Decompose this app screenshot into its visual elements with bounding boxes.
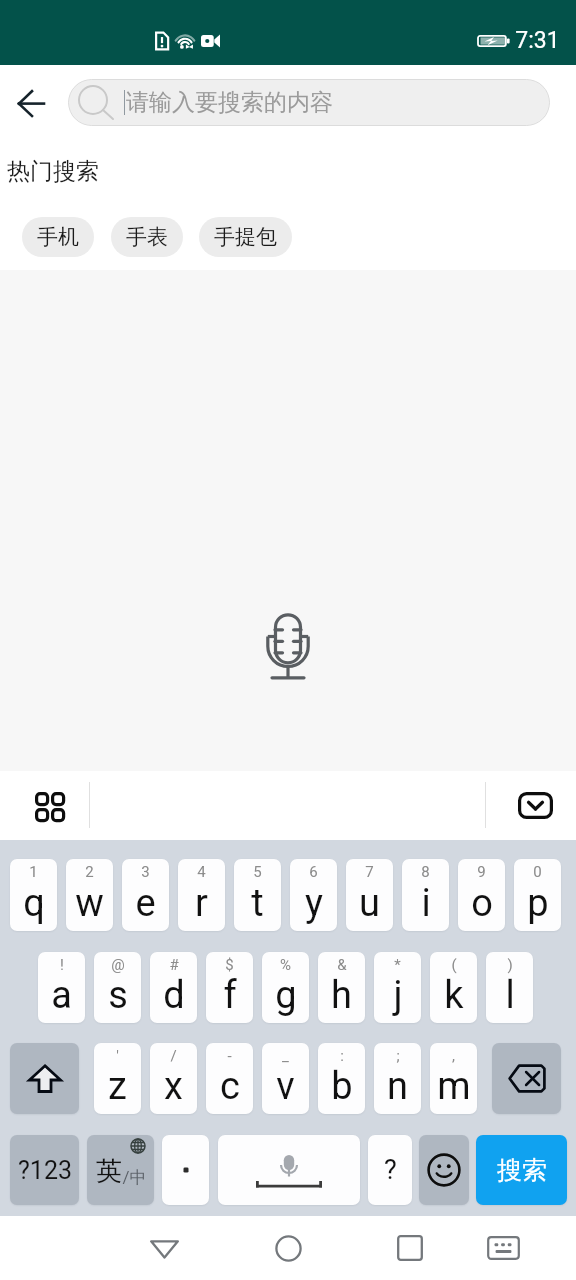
button[interactable]: 1 — [10, 859, 57, 931]
staticText: 7:31 — [515, 27, 560, 54]
button[interactable]: ) — [486, 952, 533, 1023]
staticText: 英 — [96, 1155, 122, 1188]
button[interactable]: _ — [262, 1043, 309, 1114]
button[interactable]: % — [262, 952, 309, 1023]
staticText: ! — [60, 956, 64, 974]
staticText: ) — [507, 956, 513, 974]
staticText: , — [452, 1047, 455, 1065]
staticText: j — [393, 973, 403, 1018]
button[interactable] — [419, 1135, 469, 1205]
staticText: c — [220, 1064, 240, 1109]
button[interactable]: Back — [10, 83, 54, 127]
button[interactable]: Recents — [376, 1220, 444, 1276]
button[interactable]: # — [150, 952, 197, 1023]
button[interactable]: , — [430, 1043, 477, 1114]
button[interactable]: Back — [130, 1220, 198, 1276]
staticText: t — [251, 881, 264, 926]
button[interactable]: 请输入要搜索的内容 — [68, 79, 550, 126]
staticText: * — [394, 956, 401, 974]
button[interactable]: Keyboard menu — [25, 782, 72, 829]
staticText: _ — [282, 1047, 289, 1065]
staticText: f — [223, 973, 237, 1018]
staticText: ( — [451, 956, 457, 974]
staticText: h — [331, 973, 352, 1018]
button[interactable]: 搜索 — [476, 1135, 567, 1205]
staticText: 2 — [85, 863, 94, 881]
staticText: # — [169, 956, 179, 974]
button[interactable]: 2 — [66, 859, 113, 931]
staticText: 手提包 — [214, 224, 277, 250]
button[interactable] — [218, 1135, 360, 1205]
button[interactable] — [492, 1043, 561, 1114]
staticText: r — [195, 881, 208, 926]
button[interactable]: ?123 — [10, 1135, 79, 1205]
staticText: b — [331, 1064, 353, 1109]
button[interactable] — [162, 1135, 209, 1205]
staticText: y — [305, 881, 323, 926]
button[interactable]: 英 — [87, 1135, 154, 1205]
button[interactable]: ' — [94, 1043, 141, 1114]
staticText: 手机 — [37, 224, 79, 250]
button[interactable]: / — [150, 1043, 197, 1114]
staticText: & — [337, 956, 347, 974]
staticText: k — [444, 973, 464, 1018]
staticText: /中 — [122, 1167, 147, 1188]
button[interactable]: * — [374, 952, 421, 1023]
staticText: q — [23, 881, 45, 926]
staticText: 7 — [365, 863, 374, 881]
staticText: 6 — [309, 863, 318, 881]
staticText: $ — [225, 956, 234, 974]
staticText: 5 — [253, 863, 262, 881]
button[interactable]: 手机 — [22, 217, 94, 257]
button[interactable]: 4 — [178, 859, 225, 931]
button[interactable]: @ — [94, 952, 141, 1023]
staticText: l — [505, 973, 515, 1018]
staticText: g — [275, 973, 297, 1018]
staticText: 手表 — [126, 224, 168, 250]
staticText: % — [280, 956, 291, 974]
staticText: u — [359, 881, 380, 926]
staticText: e — [135, 881, 156, 926]
staticText: ? — [384, 1154, 397, 1186]
button[interactable]: Keyboard — [469, 1220, 537, 1276]
button[interactable]: 6 — [290, 859, 337, 931]
button[interactable]: & — [318, 952, 365, 1023]
staticText: v — [276, 1064, 295, 1109]
button[interactable]: 手提包 — [199, 217, 292, 257]
staticText: 搜索 — [497, 1155, 547, 1186]
staticText: d — [163, 973, 185, 1018]
staticText: 1 — [29, 863, 38, 881]
button[interactable]: 8 — [402, 859, 449, 931]
staticText: - — [227, 1047, 232, 1065]
button[interactable]: Hide keyboard — [512, 782, 559, 829]
staticText: o — [471, 881, 493, 926]
button[interactable]: ? — [368, 1135, 412, 1205]
staticText: w — [75, 881, 104, 926]
button[interactable]: 0 — [514, 859, 561, 931]
staticText: x — [164, 1064, 183, 1109]
button[interactable]: ; — [374, 1043, 421, 1114]
button[interactable]: - — [206, 1043, 253, 1114]
button[interactable]: 9 — [458, 859, 505, 931]
staticText: z — [108, 1064, 127, 1109]
staticText: a — [51, 973, 72, 1018]
staticText: ' — [116, 1047, 119, 1065]
button[interactable]: 7 — [346, 859, 393, 931]
staticText: : — [340, 1047, 344, 1065]
button[interactable]: : — [318, 1043, 365, 1114]
button[interactable]: 手表 — [111, 217, 183, 257]
button[interactable]: ( — [430, 952, 477, 1023]
button[interactable]: 3 — [122, 859, 169, 931]
staticText: n — [387, 1064, 408, 1109]
staticText: p — [527, 881, 549, 926]
button[interactable]: ! — [38, 952, 85, 1023]
staticText: 9 — [477, 863, 486, 881]
staticText: 3 — [141, 863, 150, 881]
staticText: m — [437, 1064, 471, 1109]
button[interactable]: Home — [254, 1220, 322, 1276]
staticText: / — [170, 1047, 177, 1065]
button[interactable]: 5 — [234, 859, 281, 931]
button[interactable] — [10, 1043, 79, 1114]
staticText: s — [108, 973, 128, 1018]
button[interactable]: $ — [206, 952, 253, 1023]
